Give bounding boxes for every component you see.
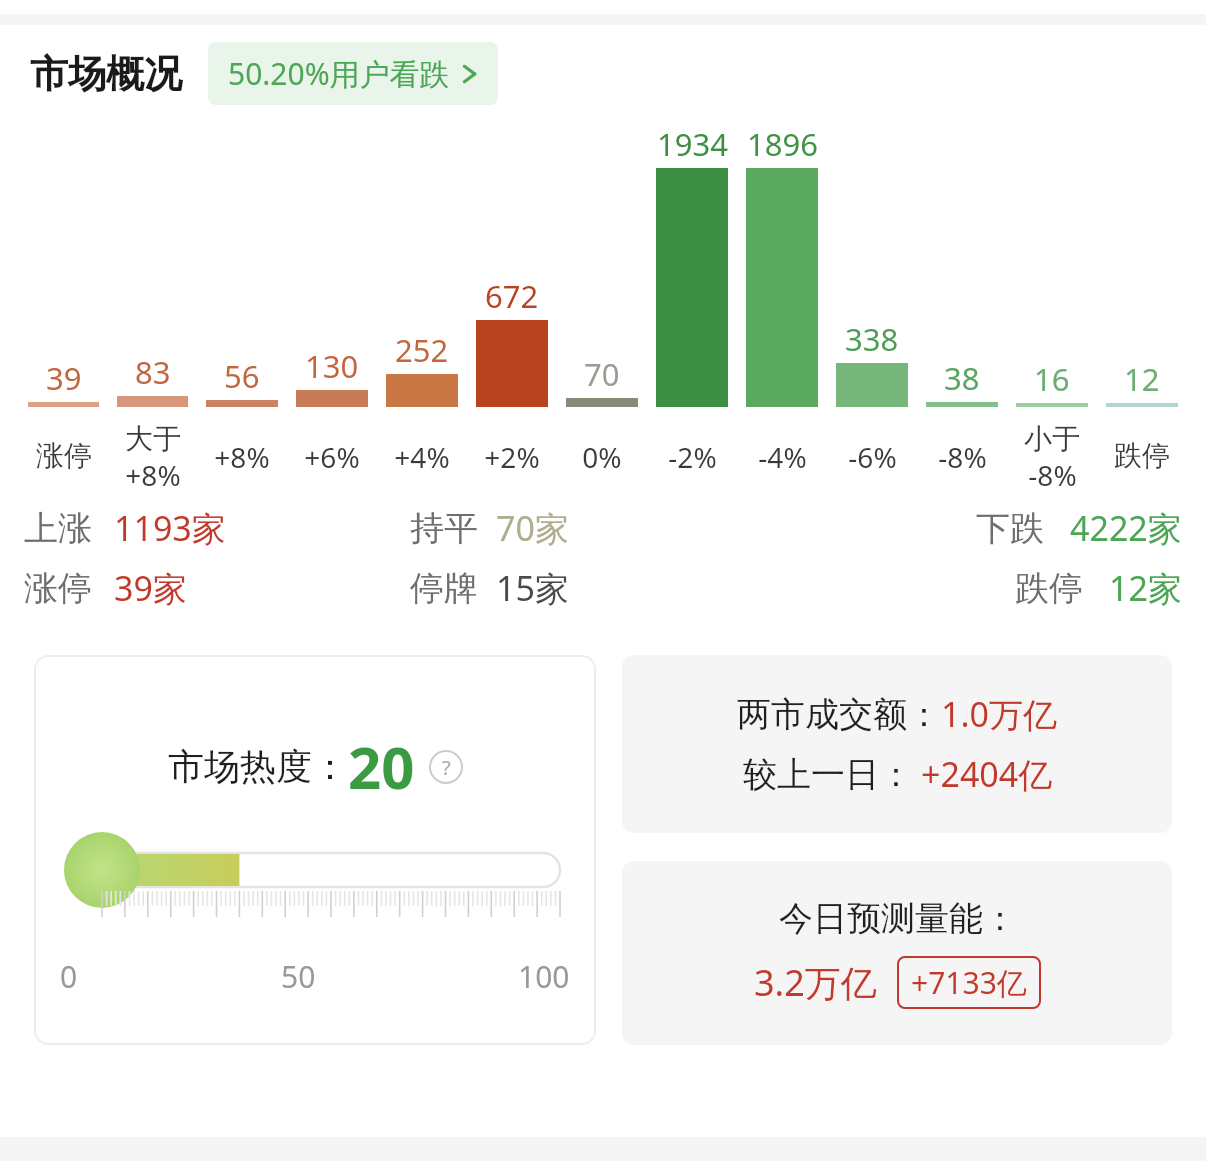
staticText: 50.20%用户看跌 — [228, 53, 450, 94]
staticText: 70家 — [496, 505, 569, 551]
staticText: 20 — [348, 727, 415, 806]
staticText: 涨停 — [24, 567, 92, 610]
staticText: 70 — [584, 353, 620, 395]
staticText: 0% — [582, 438, 622, 476]
staticText: 39 — [46, 357, 82, 399]
staticText: 上涨 — [24, 507, 92, 550]
staticText: -8% — [938, 438, 987, 476]
staticText: 跌停 — [1114, 438, 1170, 473]
staticText: 672 — [485, 275, 539, 317]
staticText: +2404亿 — [921, 751, 1053, 797]
staticText: 12 — [1124, 358, 1160, 400]
staticText: 涨停 — [36, 438, 92, 473]
staticText: 252 — [395, 329, 449, 371]
staticText: 下跌 — [976, 507, 1044, 550]
staticText: 较上一日： — [743, 753, 913, 796]
staticText: 大于 — [125, 421, 181, 456]
staticText: 停牌 — [410, 567, 478, 610]
staticText: 小于 — [1024, 421, 1080, 456]
staticText: 100 — [518, 956, 570, 997]
staticText: -2% — [668, 438, 717, 476]
staticText: -4% — [758, 438, 807, 476]
staticText: 0 — [60, 956, 78, 997]
staticText: 130 — [305, 345, 359, 387]
button[interactable]: 两市成交额： — [622, 655, 1172, 833]
staticText: 1896 — [747, 123, 818, 165]
staticText: 4222家 — [1070, 505, 1182, 551]
button[interactable]: 50.20%用户看跌 — [208, 42, 498, 105]
staticText: 38 — [944, 357, 980, 399]
staticText: 1934 — [657, 123, 728, 165]
staticText: 持平 — [410, 507, 478, 550]
staticText: 50 — [281, 956, 316, 997]
staticText: +4% — [394, 438, 450, 476]
staticText: -8% — [1028, 456, 1077, 493]
staticText: 跌停 — [1015, 567, 1083, 610]
staticText: 16 — [1034, 358, 1070, 400]
staticText: 1193家 — [114, 505, 226, 551]
staticText: 市场概况 — [30, 50, 182, 98]
staticText: 两市成交额： — [737, 693, 941, 736]
staticText: +2% — [484, 438, 540, 476]
staticText: 12家 — [1109, 565, 1182, 611]
staticText: ? — [442, 754, 451, 781]
staticText: 56 — [224, 355, 260, 397]
staticText: +7133亿 — [911, 962, 1027, 1003]
staticText: 1.0万亿 — [941, 691, 1058, 737]
staticText: +8% — [214, 438, 270, 476]
staticText: 83 — [135, 351, 171, 393]
staticText: 39家 — [114, 565, 187, 611]
button[interactable]: 市场热度： — [34, 655, 596, 1045]
staticText: 15家 — [496, 565, 569, 611]
staticText: 今日预测量能： — [779, 897, 1017, 940]
staticText: +6% — [304, 438, 360, 476]
button[interactable]: 今日预测量能： — [622, 861, 1172, 1045]
staticText: +8% — [125, 456, 181, 493]
staticText: -6% — [848, 438, 897, 476]
staticText: 3.2万亿 — [754, 958, 877, 1007]
button[interactable]: 说明 — [429, 750, 463, 784]
staticText: 市场热度： — [168, 744, 348, 789]
staticText: 338 — [845, 318, 899, 360]
